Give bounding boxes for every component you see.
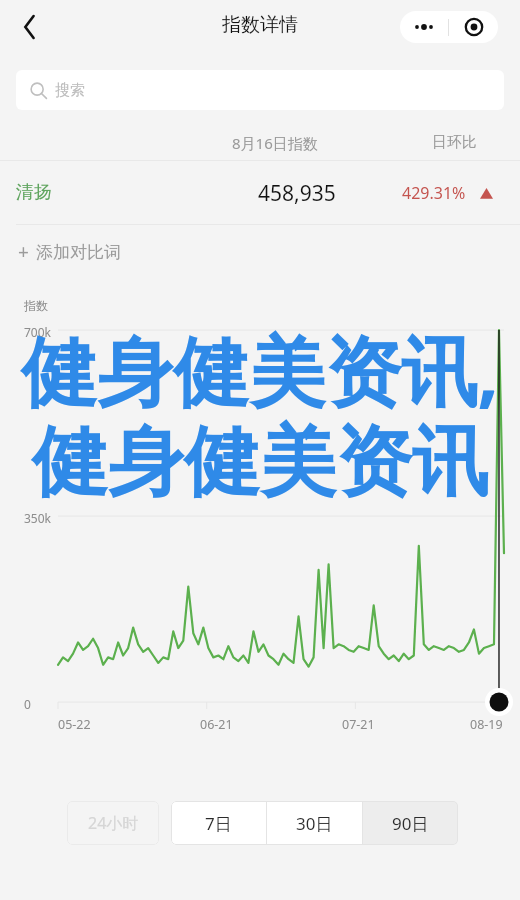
button[interactable]: Back [8, 6, 50, 48]
staticText: + [18, 239, 29, 265]
staticText: 添加对比词 [36, 242, 121, 263]
button[interactable]: + [14, 232, 125, 272]
button[interactable]: 清扬 [0, 161, 520, 225]
button[interactable]: 30日 [267, 801, 362, 845]
button[interactable]: Close [449, 11, 498, 43]
staticText: 06-21 [200, 716, 233, 733]
staticText: 24小时 [88, 812, 139, 834]
staticText: 08-19 [470, 716, 503, 733]
staticText: 搜索 [55, 81, 85, 100]
button[interactable]: 24小时 [67, 801, 159, 845]
staticText: 458,935 [258, 179, 336, 208]
staticText: 30日 [296, 812, 333, 835]
staticText: 700k [24, 324, 52, 340]
button[interactable]: 7日 [171, 801, 266, 845]
button[interactable]: 搜索 [16, 70, 504, 110]
staticText: 429.31% [402, 182, 466, 204]
staticText: 日环比 [432, 133, 477, 152]
staticText: 清扬 [16, 181, 52, 204]
button[interactable]: 90日 [363, 801, 458, 845]
staticText: 07-21 [342, 716, 375, 733]
staticText: 8月16日指数 [232, 133, 318, 153]
staticText: 05-22 [58, 716, 91, 733]
staticText: 健身健美资讯,健身健美资讯 [8, 318, 512, 510]
button[interactable]: More [400, 11, 448, 43]
staticText: 0 [24, 696, 31, 712]
staticText: 350k [24, 510, 52, 526]
staticText: 90日 [392, 812, 429, 835]
staticText: 7日 [205, 812, 232, 835]
staticText: 指数 [24, 298, 48, 313]
staticText: 指数详情 [222, 13, 298, 37]
